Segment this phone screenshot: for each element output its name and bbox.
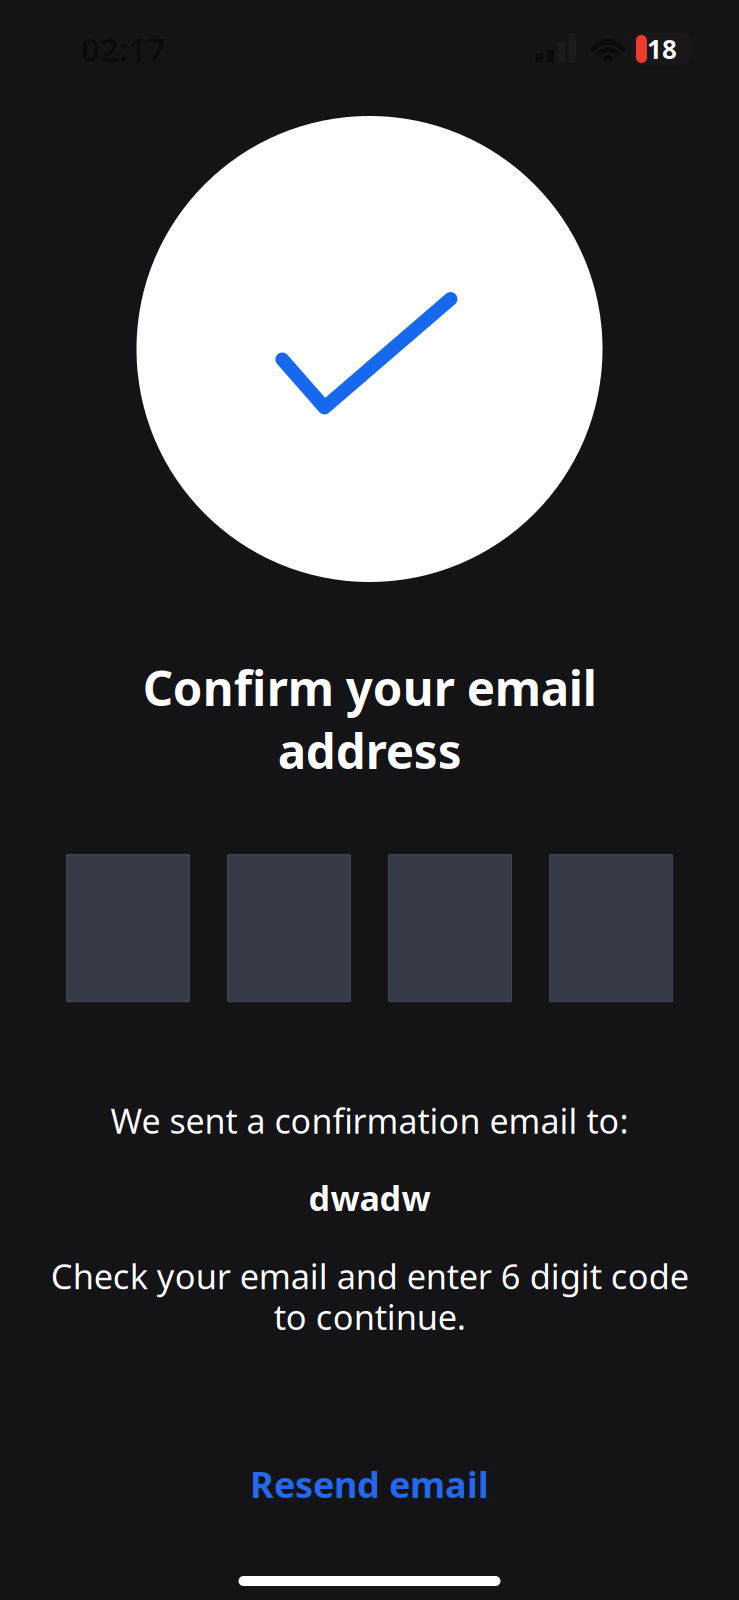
button[interactable]: Resend email — [220, 1446, 519, 1522]
staticText: We sent a confirmation email to: — [110, 1098, 628, 1143]
staticText: Check your email and enter 6 digit code … — [50, 1255, 688, 1337]
staticText: Confirm your email address — [142, 656, 596, 782]
staticText: dwadw — [308, 1175, 430, 1220]
staticText: Resend email — [250, 1460, 489, 1508]
staticText: 18 — [647, 32, 677, 66]
staticText: 02:17 — [81, 27, 166, 71]
